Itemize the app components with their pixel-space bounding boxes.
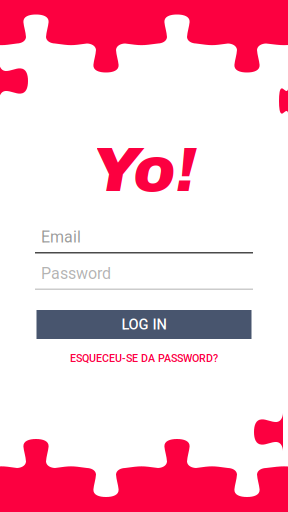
button[interactable]: Password xyxy=(35,266,253,290)
staticText: LOG IN xyxy=(121,316,166,333)
button[interactable]: Email xyxy=(35,230,253,253)
staticText: Yo! xyxy=(91,136,196,204)
staticText: ESQUECEU-SE DA PASSWORD? xyxy=(70,352,218,364)
button[interactable]: ESQUECEU-SE DA PASSWORD? xyxy=(70,352,218,364)
staticText: Email xyxy=(41,228,81,246)
staticText: Password xyxy=(41,264,111,283)
button[interactable]: LOG IN xyxy=(36,310,251,339)
